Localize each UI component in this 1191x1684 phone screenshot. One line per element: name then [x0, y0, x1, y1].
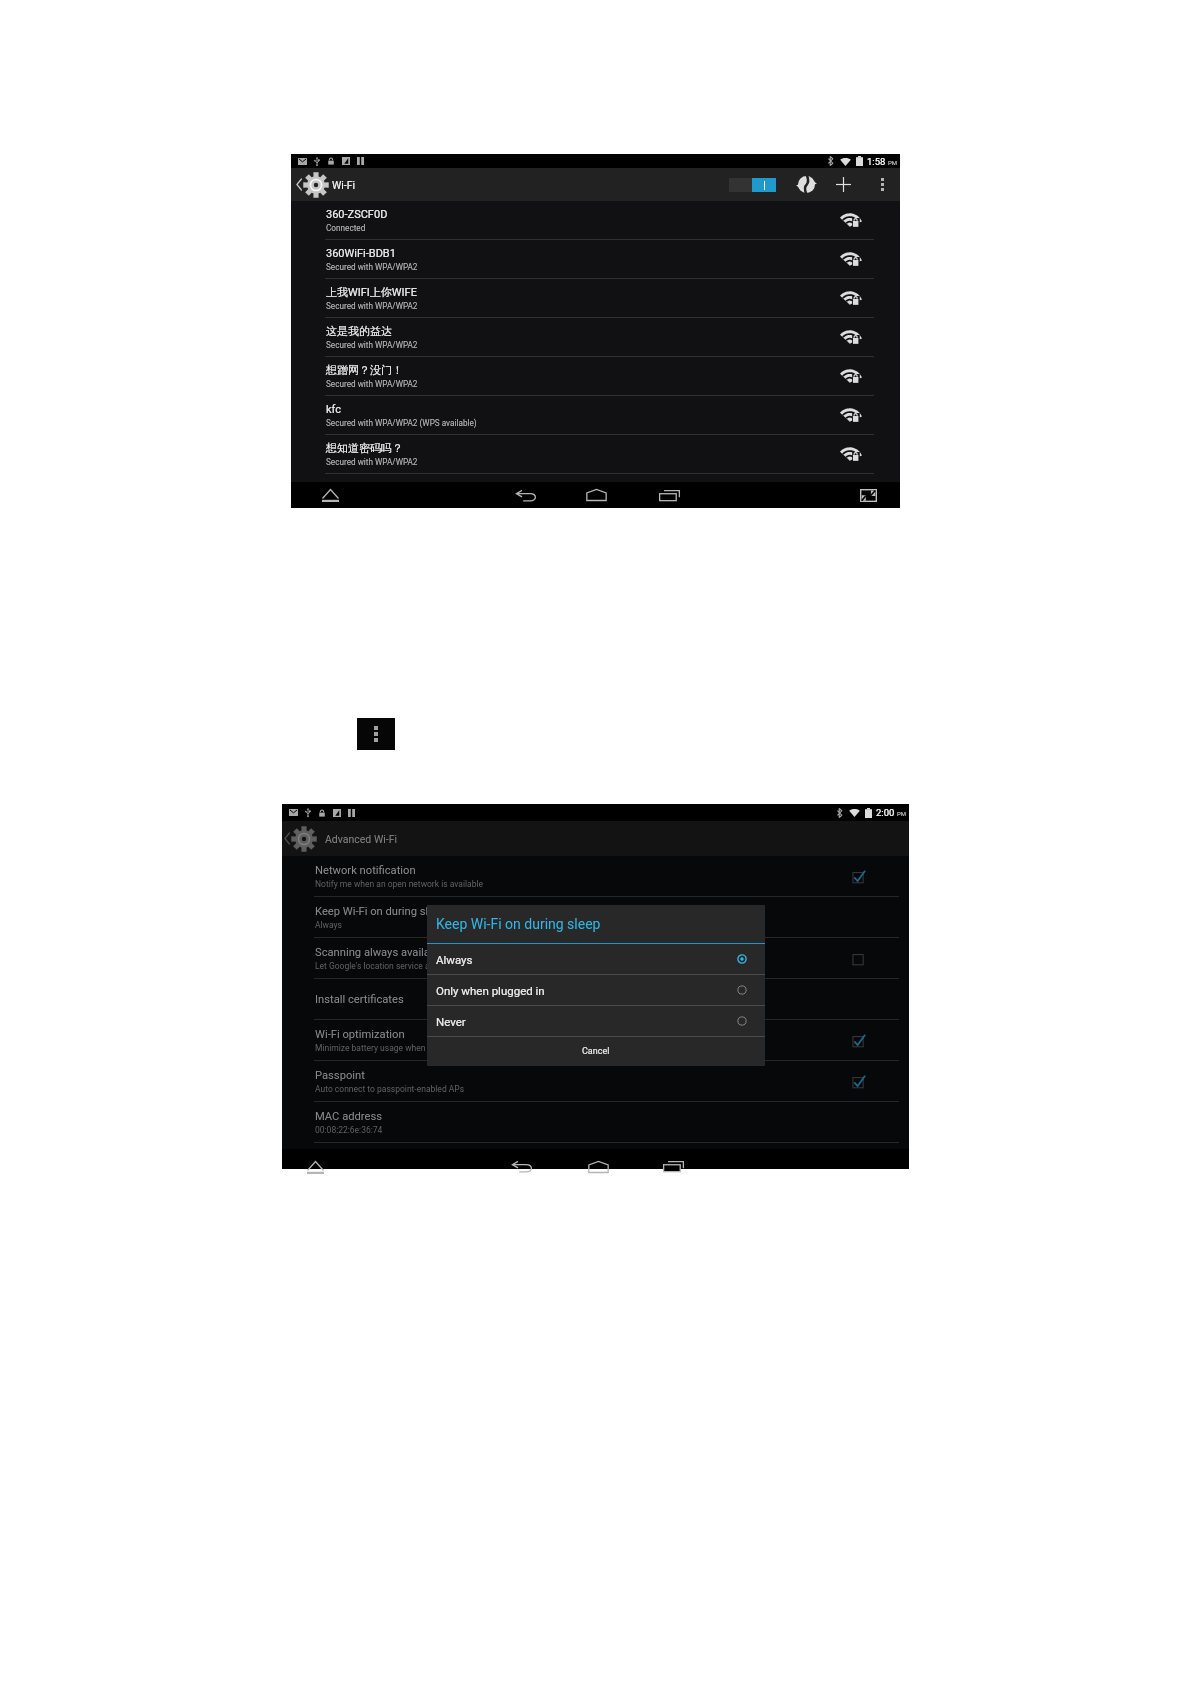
button[interactable]: 360-ZSCF0D: [291, 201, 900, 240]
staticText: Scanning always available: [315, 946, 445, 959]
staticText: Network notification: [315, 864, 416, 877]
button[interactable]: Network notification: [282, 856, 909, 897]
staticText: Secured with WPA/WPA2: [326, 340, 418, 350]
staticText: 上我WIFI上你WIFE: [326, 285, 417, 299]
button[interactable]: Recent apps: [650, 1161, 696, 1181]
button[interactable]: 想知道密码吗？: [291, 435, 900, 474]
button[interactable]: 想蹭网？没门！: [291, 357, 900, 396]
staticText: 1:58: [867, 156, 886, 167]
staticText: Minimize battery usage when: [315, 1043, 426, 1053]
button[interactable]: Hide navigation: [305, 482, 355, 508]
staticText: kfc: [326, 403, 342, 416]
staticText: Secured with WPA/WPA2 (WPS available): [326, 418, 477, 428]
staticText: Auto connect to passpoint-enabled APs: [315, 1084, 465, 1094]
button[interactable]: More options: [357, 718, 395, 750]
staticText: 想知道密码吗？: [326, 441, 403, 455]
button[interactable]: Wi-Fi on: [724, 168, 781, 201]
staticText: Secured with WPA/WPA2: [326, 301, 418, 311]
button[interactable]: Back: [293, 168, 329, 201]
staticText: Secured with WPA/WPA2: [326, 457, 418, 467]
button[interactable]: Add network: [826, 168, 861, 201]
button[interactable]: Scan: [789, 168, 824, 201]
staticText: Passpoint: [315, 1069, 365, 1082]
button[interactable]: Wi-Fi optimization: [282, 1020, 909, 1061]
button[interactable]: Passpoint: [282, 1061, 909, 1102]
button[interactable]: Keep Wi-Fi on during sleep: [282, 897, 909, 938]
staticText: Let Google's location service a: [315, 961, 430, 971]
button[interactable]: Hide navigation: [290, 1161, 340, 1181]
staticText: Secured with WPA/WPA2: [326, 262, 418, 272]
staticText: Notify me when an open network is availa…: [315, 879, 484, 889]
button[interactable]: Never: [427, 1006, 765, 1036]
staticText: Advanced Wi-Fi: [325, 833, 398, 845]
button[interactable]: Back: [282, 821, 317, 856]
button[interactable]: Home: [573, 482, 619, 508]
staticText: 想蹭网？没门！: [326, 363, 403, 377]
button[interactable]: 上我WIFI上你WIFE: [291, 279, 900, 318]
button[interactable]: 这是我的益达: [291, 318, 900, 357]
button[interactable]: More options: [869, 168, 896, 201]
staticText: Wi-Fi: [332, 179, 356, 191]
staticText: Install certificates: [315, 993, 404, 1006]
staticText: Always: [436, 953, 473, 966]
staticText: 360-ZSCF0D: [326, 208, 388, 221]
button[interactable]: kfc: [291, 396, 900, 435]
staticText: Connected: [326, 223, 366, 233]
button[interactable]: MAC address: [282, 1102, 909, 1143]
button[interactable]: Screenshot: [845, 482, 891, 508]
button[interactable]: Only when plugged in: [427, 975, 765, 1005]
button[interactable]: 360WiFi-BDB1: [291, 240, 900, 279]
staticText: 00:08:22:6e:36:74: [315, 1125, 383, 1135]
staticText: Never: [436, 1015, 466, 1028]
staticText: 这是我的益达: [326, 324, 392, 338]
button[interactable]: Recent apps: [646, 482, 692, 508]
staticText: MAC address: [315, 1110, 383, 1123]
staticText: Keep Wi-Fi on during sleep: [436, 916, 601, 932]
staticText: Always: [315, 920, 342, 930]
button[interactable]: Scanning always available: [282, 938, 909, 979]
staticText: 2:00: [876, 807, 895, 818]
staticText: PM: [888, 159, 898, 166]
button[interactable]: Always: [427, 944, 765, 974]
button[interactable]: Back: [503, 482, 549, 508]
button[interactable]: Cancel: [427, 1037, 765, 1066]
staticText: Secured with WPA/WPA2: [326, 379, 418, 389]
button[interactable]: Home: [575, 1161, 621, 1181]
staticText: Keep Wi-Fi on during sleep: [315, 905, 447, 918]
staticText: Cancel: [582, 1046, 610, 1057]
staticText: 360WiFi-BDB1: [326, 247, 396, 260]
staticText: Wi-Fi optimization: [315, 1028, 405, 1041]
staticText: PM: [897, 810, 907, 817]
staticText: Only when plugged in: [436, 984, 545, 997]
button[interactable]: Back: [499, 1161, 545, 1181]
button[interactable]: Install certificates: [282, 979, 909, 1020]
